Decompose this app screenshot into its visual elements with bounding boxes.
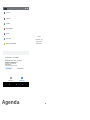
- button[interactable]: Create: [5, 67, 13, 69]
- button[interactable]: Month: [8, 77, 13, 81]
- staticText: Month: [8, 79, 13, 81]
- staticText: Trip: [6, 22, 10, 25]
- staticText: Create a new agenda for your team mates …: [5, 56, 23, 65]
- button[interactable]: Design: [3, 26, 29, 31]
- staticText: Lorem ipsum dolor sit amet consectetur e…: [5, 61, 20, 69]
- button[interactable]: Tue 1: [3, 16, 29, 21]
- staticText: Day notes: [6, 42, 16, 45]
- button[interactable]: Day notes: [3, 41, 29, 46]
- button[interactable]: Menu: [3, 7, 29, 10]
- staticText: Tap event to see full details: [35, 35, 43, 44]
- button[interactable]: Call: [3, 31, 29, 36]
- button[interactable]: Gym: [3, 36, 29, 41]
- staticText: April: [6, 11, 11, 14]
- staticText: Dismiss: [17, 67, 24, 69]
- staticText: Agenda: [19, 79, 25, 81]
- button[interactable]: Dismiss: [17, 67, 24, 69]
- staticText: Create: [6, 67, 12, 69]
- staticText: Tue 1: [6, 17, 12, 20]
- staticText: Gym: [6, 37, 11, 40]
- staticText: Agenda: [2, 99, 20, 105]
- staticText: Design: [6, 27, 13, 30]
- button[interactable]: Agenda: [19, 77, 25, 81]
- staticText: Call: [6, 32, 10, 35]
- button[interactable]: Trip: [3, 21, 29, 26]
